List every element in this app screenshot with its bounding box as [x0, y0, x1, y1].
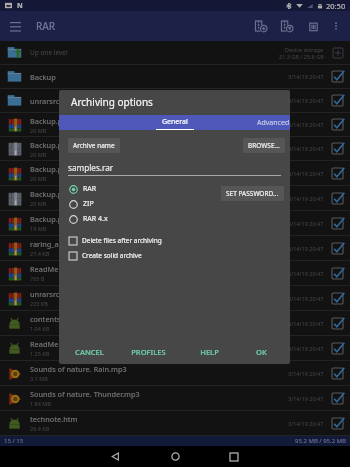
staticText: ReadMe.rar	[30, 264, 71, 274]
button[interactable]: ReadMe.rar	[0, 261, 350, 285]
staticText: technote.htm	[30, 414, 78, 424]
staticText: CANCEL	[75, 347, 104, 357]
button[interactable]: RAR 4.x	[69, 214, 108, 224]
staticText: Up one level	[30, 48, 68, 57]
staticText: ReadMe.apk	[30, 339, 74, 349]
button[interactable]: OK	[254, 343, 269, 361]
button[interactable]: Backup.part3.rar	[0, 161, 350, 185]
staticText: 3/14/19 20:47	[288, 220, 324, 227]
button[interactable]: BROWSE...	[243, 138, 285, 153]
button[interactable]: Backup.part1.rar	[0, 113, 350, 136]
staticText: 20 MB	[30, 200, 47, 207]
button[interactable]: Advanced	[234, 115, 290, 130]
staticText: 20 MB	[30, 151, 47, 158]
button[interactable]: unrarsrc-5.6.8.tar.gz	[0, 286, 350, 310]
button[interactable]: Backup.part5.rar	[0, 211, 350, 235]
staticText: 3/14/19 20:47	[288, 370, 324, 377]
button[interactable]: ReadMe.apk	[0, 336, 350, 360]
staticText: 3/14/19 20:47	[288, 145, 324, 152]
staticText: Backup.part1.rar	[30, 116, 89, 126]
staticText: PROFILES	[131, 347, 166, 357]
staticText: 1.04 KB	[30, 325, 50, 332]
staticText: N	[17, 1, 23, 11]
staticText: 19 MB	[30, 225, 47, 232]
button[interactable]: Extract files	[275, 14, 299, 38]
staticText: Backup.part4.rar	[30, 189, 89, 199]
staticText: 3/14/19 20:47	[288, 420, 324, 427]
staticText: RAR	[83, 184, 97, 194]
staticText: unrarsrc-5.6.8.tar.gz	[30, 289, 100, 299]
staticText: rarlng_arm.rar	[30, 239, 81, 249]
staticText: Archiving options	[71, 95, 153, 109]
button[interactable]: Up one level	[0, 41, 350, 64]
button[interactable]: Backup	[0, 65, 350, 88]
button[interactable]: unrarsrc-5.6.8	[0, 89, 350, 112]
staticText: unrarsrc-5.6.8	[30, 96, 79, 106]
staticText: 3/14/19 20:47	[288, 73, 324, 80]
staticText: 223 KB	[30, 300, 48, 307]
button[interactable]: Create solid archive	[69, 251, 142, 260]
staticText: 3/14/19 20:47	[288, 245, 324, 252]
staticText: Create solid archive	[82, 251, 142, 260]
staticText: 3/14/19 20:47	[288, 270, 324, 277]
button[interactable]: Sounds of nature. Thunder.mp3	[0, 386, 350, 410]
button[interactable]: Recent apps	[223, 446, 245, 467]
staticText: Backup.part2.rar	[30, 140, 89, 150]
button[interactable]: HELP	[198, 343, 221, 361]
staticText: BROWSE...	[248, 141, 280, 150]
button[interactable]: RAR	[69, 184, 97, 194]
button[interactable]: Backup.part2.rar	[0, 137, 350, 160]
button[interactable]: Back	[104, 446, 126, 467]
button[interactable]: Delete files after archiving	[69, 236, 162, 245]
staticText: Backup	[30, 72, 56, 82]
staticText: Delete files after archiving	[82, 236, 162, 245]
staticText: Sounds of nature. Rain.mp3	[30, 364, 127, 374]
staticText: 20:50	[326, 1, 346, 11]
staticText: Device storage	[285, 46, 324, 53]
button[interactable]: General	[135, 115, 215, 130]
staticText: 20 MB	[30, 175, 47, 182]
button[interactable]: Delete	[301, 14, 325, 38]
staticText: 1.84 MB	[30, 400, 51, 407]
staticText: 26.4 KB	[30, 425, 50, 432]
staticText: Advanced	[257, 118, 290, 128]
staticText: 3.1 MB	[30, 375, 48, 382]
staticText: 27.4 KB	[30, 250, 50, 257]
staticText: 15 / 15	[4, 437, 24, 445]
staticText: 3/14/19 20:47	[288, 97, 324, 104]
staticText: contents.apk	[30, 314, 76, 324]
staticText: 1.25 KB	[30, 350, 50, 357]
button[interactable]: Archive name	[68, 138, 120, 153]
button[interactable]: Add to archive	[249, 14, 273, 38]
staticText: 3/14/19 20:47	[288, 295, 324, 302]
staticText: RAR 4.x	[83, 214, 108, 224]
staticText: 20 MB	[30, 127, 47, 134]
button[interactable]: Navigation menu	[0, 11, 30, 41]
staticText: SET PASSWORD...	[226, 189, 279, 198]
button[interactable]: Backup.part4.rar	[0, 186, 350, 210]
staticText: 95.2 MB / 95.2 MB	[295, 437, 346, 445]
staticText: samples.rar	[68, 162, 114, 173]
button[interactable]: rarlng_arm.rar	[0, 236, 350, 260]
staticText: 3/14/19 20:47	[288, 195, 324, 202]
button[interactable]: PROFILES	[129, 343, 168, 361]
staticText: 3/14/19 20:47	[288, 320, 324, 327]
staticText: Backup.part5.rar	[30, 214, 89, 224]
staticText: General	[162, 117, 188, 127]
staticText: OK	[256, 347, 267, 357]
button[interactable]: ZIP	[69, 199, 94, 209]
button[interactable]: technote.htm	[0, 411, 350, 435]
staticText: 3/14/19 20:47	[288, 121, 324, 128]
staticText: 765 B	[30, 275, 45, 282]
staticText: 3/14/19 20:47	[288, 395, 324, 402]
button[interactable]: Home	[164, 446, 186, 467]
button[interactable]: CANCEL	[73, 343, 106, 361]
staticText: ZIP	[83, 199, 94, 209]
button[interactable]: contents.apk	[0, 311, 350, 335]
button[interactable]: SET PASSWORD...	[221, 186, 284, 201]
staticText: 3/14/19 20:47	[288, 170, 324, 177]
button[interactable]: Sounds of nature. Rain.mp3	[0, 361, 350, 385]
staticText: HELP	[200, 347, 219, 357]
staticText: Backup.part3.rar	[30, 164, 89, 174]
button[interactable]: More options	[325, 15, 347, 37]
